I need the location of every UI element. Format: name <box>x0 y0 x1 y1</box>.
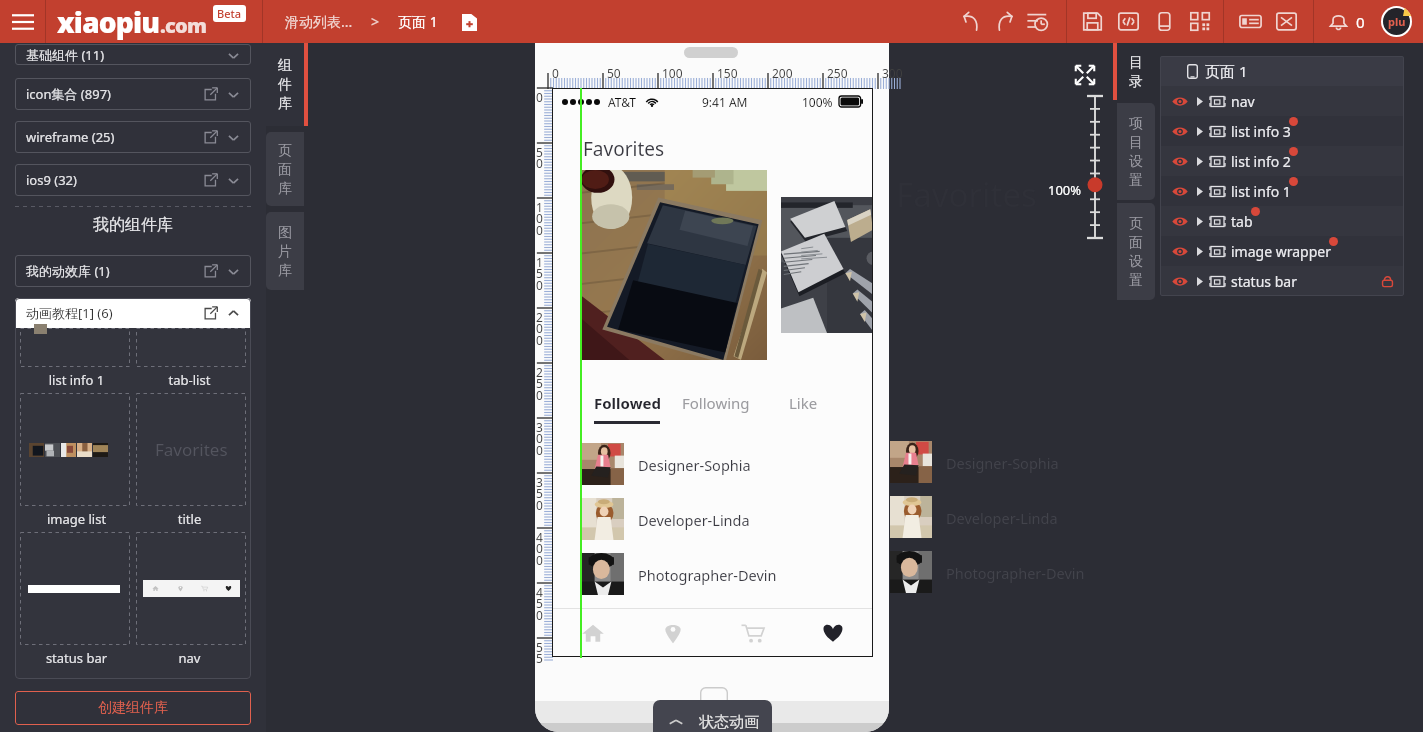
staticText: 状态动画 <box>699 713 759 732</box>
button[interactable]: Menu <box>0 0 45 43</box>
staticText: AT&T <box>608 94 636 110</box>
button[interactable]: Photographer-Devin <box>582 553 873 608</box>
staticText: 450 <box>536 584 546 624</box>
staticText: 创建组件库 <box>98 699 168 717</box>
staticText: 0 <box>536 89 546 105</box>
button[interactable]: Followed <box>594 393 661 424</box>
staticText: 页面设置 <box>1128 215 1144 289</box>
button[interactable]: tab-list <box>136 328 246 367</box>
button[interactable]: nav <box>136 532 246 645</box>
staticText: 100 <box>536 199 546 239</box>
staticText: icon集合 (897) <box>26 85 111 103</box>
button[interactable]: QR code <box>1182 0 1218 43</box>
button[interactable]: View code <box>1110 0 1146 43</box>
button[interactable]: 我的动效库 (1) <box>15 255 251 287</box>
staticText: title <box>133 510 246 528</box>
button[interactable]: New page <box>456 9 482 35</box>
button[interactable]: 页面库 <box>266 132 304 206</box>
staticText: 250 <box>536 364 546 404</box>
button[interactable]: Following <box>682 393 750 413</box>
button[interactable]: Account <box>1381 6 1412 37</box>
staticText: 页面 1 <box>1205 61 1248 81</box>
button[interactable]: 状态动画 <box>653 700 772 732</box>
button[interactable]: 图片库 <box>266 212 304 290</box>
staticText: tab <box>1231 212 1253 231</box>
button[interactable]: Notifications <box>1328 11 1365 32</box>
button[interactable]: 页面设置 <box>1117 203 1155 300</box>
staticText: plu <box>1388 14 1406 29</box>
staticText: Developer-Linda <box>638 510 750 530</box>
button[interactable]: ios9 (32) <box>15 164 251 196</box>
staticText: 400 <box>536 529 546 569</box>
button[interactable]: Cart <box>713 609 793 656</box>
button[interactable]: Designer-Sophia <box>582 443 873 498</box>
staticText: 0 <box>1356 12 1365 32</box>
button[interactable]: title <box>136 393 246 506</box>
staticText: 图片库 <box>277 224 293 279</box>
staticText: 页面 1 <box>398 12 438 31</box>
button[interactable]: 创建组件库 <box>15 691 251 725</box>
button[interactable]: Save <box>1074 0 1110 43</box>
button[interactable]: Like <box>789 393 818 413</box>
button[interactable]: Presentation <box>1232 0 1268 43</box>
staticText: status bar <box>1231 272 1297 291</box>
button[interactable]: image wrapper <box>1160 236 1404 266</box>
button[interactable]: nav <box>1160 86 1404 116</box>
button[interactable]: list info 1 <box>1160 176 1404 206</box>
staticText: Designer-Sophia <box>638 455 751 475</box>
button[interactable]: Home <box>552 609 633 656</box>
staticText: nav <box>1231 92 1255 111</box>
staticText: 250 <box>827 65 848 81</box>
staticText: status bar <box>20 649 133 667</box>
button[interactable]: list info 2 <box>1160 146 1404 176</box>
button[interactable]: Redo <box>988 0 1021 43</box>
button[interactable]: Preview on phone <box>1146 0 1182 43</box>
staticText: Following <box>682 393 750 413</box>
button[interactable]: status bar <box>20 532 130 645</box>
button[interactable]: 组件库 <box>266 43 304 126</box>
button[interactable]: icon集合 (897) <box>15 78 251 110</box>
staticText: Photographer-Devin <box>946 563 1085 583</box>
staticText: Developer-Linda <box>946 508 1058 528</box>
staticText: 55 <box>536 639 546 667</box>
staticText: Photographer-Devin <box>638 565 777 585</box>
staticText: 50 <box>607 65 621 81</box>
button[interactable]: 动画教程[1] (6) <box>15 298 251 328</box>
staticText: > <box>371 12 380 31</box>
button[interactable]: tab <box>1160 206 1404 236</box>
staticText: 50 <box>536 144 546 172</box>
staticText: 我的动效库 (1) <box>26 262 110 280</box>
button[interactable]: wireframe (25) <box>15 121 251 153</box>
staticText: list info 1 <box>20 371 133 389</box>
staticText: 0 <box>552 65 559 81</box>
button[interactable]: status bar <box>1160 266 1404 296</box>
staticText: 我的组件库 <box>15 215 251 235</box>
staticText: 100% <box>1048 181 1082 199</box>
button[interactable]: Places <box>633 609 713 656</box>
staticText: 页面库 <box>277 142 293 197</box>
staticText: 9:41 AM <box>702 94 748 110</box>
staticText: list info 1 <box>1231 182 1291 201</box>
staticText: 300 <box>882 65 903 81</box>
button[interactable]: Fit to screen <box>1072 62 1098 88</box>
staticText: Like <box>789 393 818 413</box>
staticText: 350 <box>536 474 546 514</box>
button[interactable]: History <box>1021 0 1054 43</box>
button[interactable]: Full screen <box>1268 0 1304 43</box>
button[interactable]: 基础组件 (11) <box>26 44 240 65</box>
staticText: 滑动列表... <box>285 12 353 31</box>
staticText: 组件库 <box>277 57 293 112</box>
button[interactable]: Developer-Linda <box>582 498 873 553</box>
button[interactable]: Favorites <box>793 609 873 656</box>
button[interactable]: Undo <box>955 0 988 43</box>
button[interactable]: 项目设置 <box>1117 103 1155 200</box>
staticText: 项目设置 <box>1128 115 1144 189</box>
button[interactable]: list info 1 <box>20 328 130 367</box>
button[interactable]: list info 3 <box>1160 116 1404 146</box>
staticText: Favorites <box>583 136 665 162</box>
staticText: xiaopiu <box>57 3 160 41</box>
staticText: wireframe (25) <box>26 128 115 146</box>
button[interactable]: 目录 <box>1117 43 1155 100</box>
button[interactable]: image list <box>20 393 130 506</box>
